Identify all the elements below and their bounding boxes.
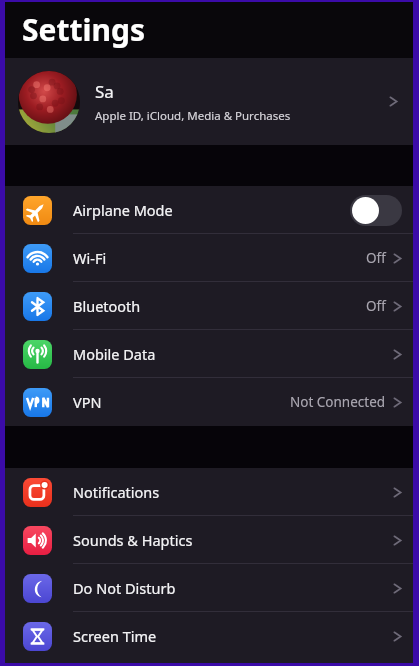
- staticText: Bluetooth: [73, 296, 366, 316]
- button[interactable]: Bluetooth: [5, 282, 413, 330]
- staticText: Apple ID, iCloud, Media & Purchases: [95, 108, 291, 124]
- staticText: Screen Time: [73, 626, 393, 646]
- staticText: Mobile Data: [73, 344, 393, 364]
- button[interactable]: Sounds & Haptics: [5, 516, 413, 564]
- button[interactable]: Airplane Mode toggle: [350, 195, 402, 226]
- button[interactable]: Do Not Disturb: [5, 564, 413, 612]
- staticText: Airplane Mode: [73, 200, 350, 220]
- button[interactable]: Wi-Fi: [5, 234, 413, 282]
- staticText: Sa: [95, 80, 114, 103]
- button[interactable]: VPN: [5, 378, 413, 426]
- staticText: Sounds & Haptics: [73, 530, 393, 550]
- button[interactable]: Airplane Mode: [5, 186, 413, 234]
- staticText: Off: [366, 297, 386, 315]
- staticText: VPN: [73, 392, 290, 412]
- staticText: Not Connected: [290, 393, 386, 411]
- other: Profile picture: [18, 71, 80, 133]
- staticText: Settings: [22, 9, 145, 50]
- staticText: Notifications: [73, 482, 393, 502]
- staticText: Do Not Disturb: [73, 578, 393, 598]
- staticText: Wi-Fi: [73, 248, 366, 268]
- button[interactable]: Mobile Data: [5, 330, 413, 378]
- button[interactable]: Screen Time: [5, 612, 413, 660]
- button[interactable]: Profile picture: [5, 58, 413, 145]
- staticText: Off: [366, 249, 386, 267]
- button[interactable]: Notifications: [5, 468, 413, 516]
